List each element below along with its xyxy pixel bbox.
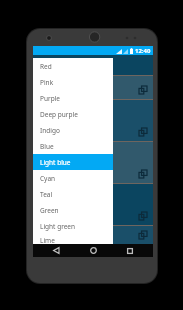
- button[interactable]: Copy: [33, 100, 153, 141]
- staticText: Teal: [40, 190, 53, 199]
- button[interactable]: Teal: [33, 186, 113, 202]
- button[interactable]: Copy: [33, 142, 153, 183]
- button[interactable]: Light green: [33, 218, 113, 234]
- staticText: Purple: [40, 94, 60, 103]
- button[interactable]: Copy: [138, 127, 148, 137]
- button[interactable]: Cyan: [33, 170, 113, 186]
- staticText: Pink: [40, 78, 54, 87]
- staticText: Red: [40, 62, 52, 71]
- button[interactable]: Pink: [33, 74, 113, 90]
- staticText: Green: [40, 206, 59, 215]
- button[interactable]: Copy: [138, 230, 148, 240]
- staticText: Lime: [40, 236, 55, 245]
- staticText: Cyan: [40, 174, 56, 183]
- staticText: Deep purple: [40, 110, 78, 119]
- button[interactable]: Purple: [33, 90, 113, 106]
- button[interactable]: Green: [33, 202, 113, 218]
- button[interactable]: Deep purple: [33, 106, 113, 122]
- button[interactable]: Recent apps: [116, 244, 144, 257]
- staticText: Light green: [40, 222, 76, 231]
- button[interactable]: Copy: [138, 169, 148, 179]
- staticText: Blue: [40, 142, 54, 151]
- button[interactable]: Copy: [33, 184, 153, 225]
- staticText: Light blue: [40, 158, 71, 167]
- button[interactable]: Red: [33, 58, 113, 74]
- button[interactable]: Back: [42, 244, 70, 257]
- button[interactable]: Copy: [33, 226, 153, 244]
- button[interactable]: Blue: [33, 138, 113, 154]
- button[interactable]: Lime: [33, 234, 113, 247]
- button[interactable]: Copy: [138, 211, 148, 221]
- staticText: Indigo: [40, 126, 60, 135]
- button[interactable]: Light blue: [33, 154, 113, 170]
- button[interactable]: Home: [79, 244, 107, 257]
- button[interactable]: Copy: [138, 85, 148, 95]
- staticText: 12:40: [135, 47, 151, 55]
- button[interactable]: Indigo: [33, 122, 113, 138]
- button[interactable]: Copy: [33, 76, 153, 99]
